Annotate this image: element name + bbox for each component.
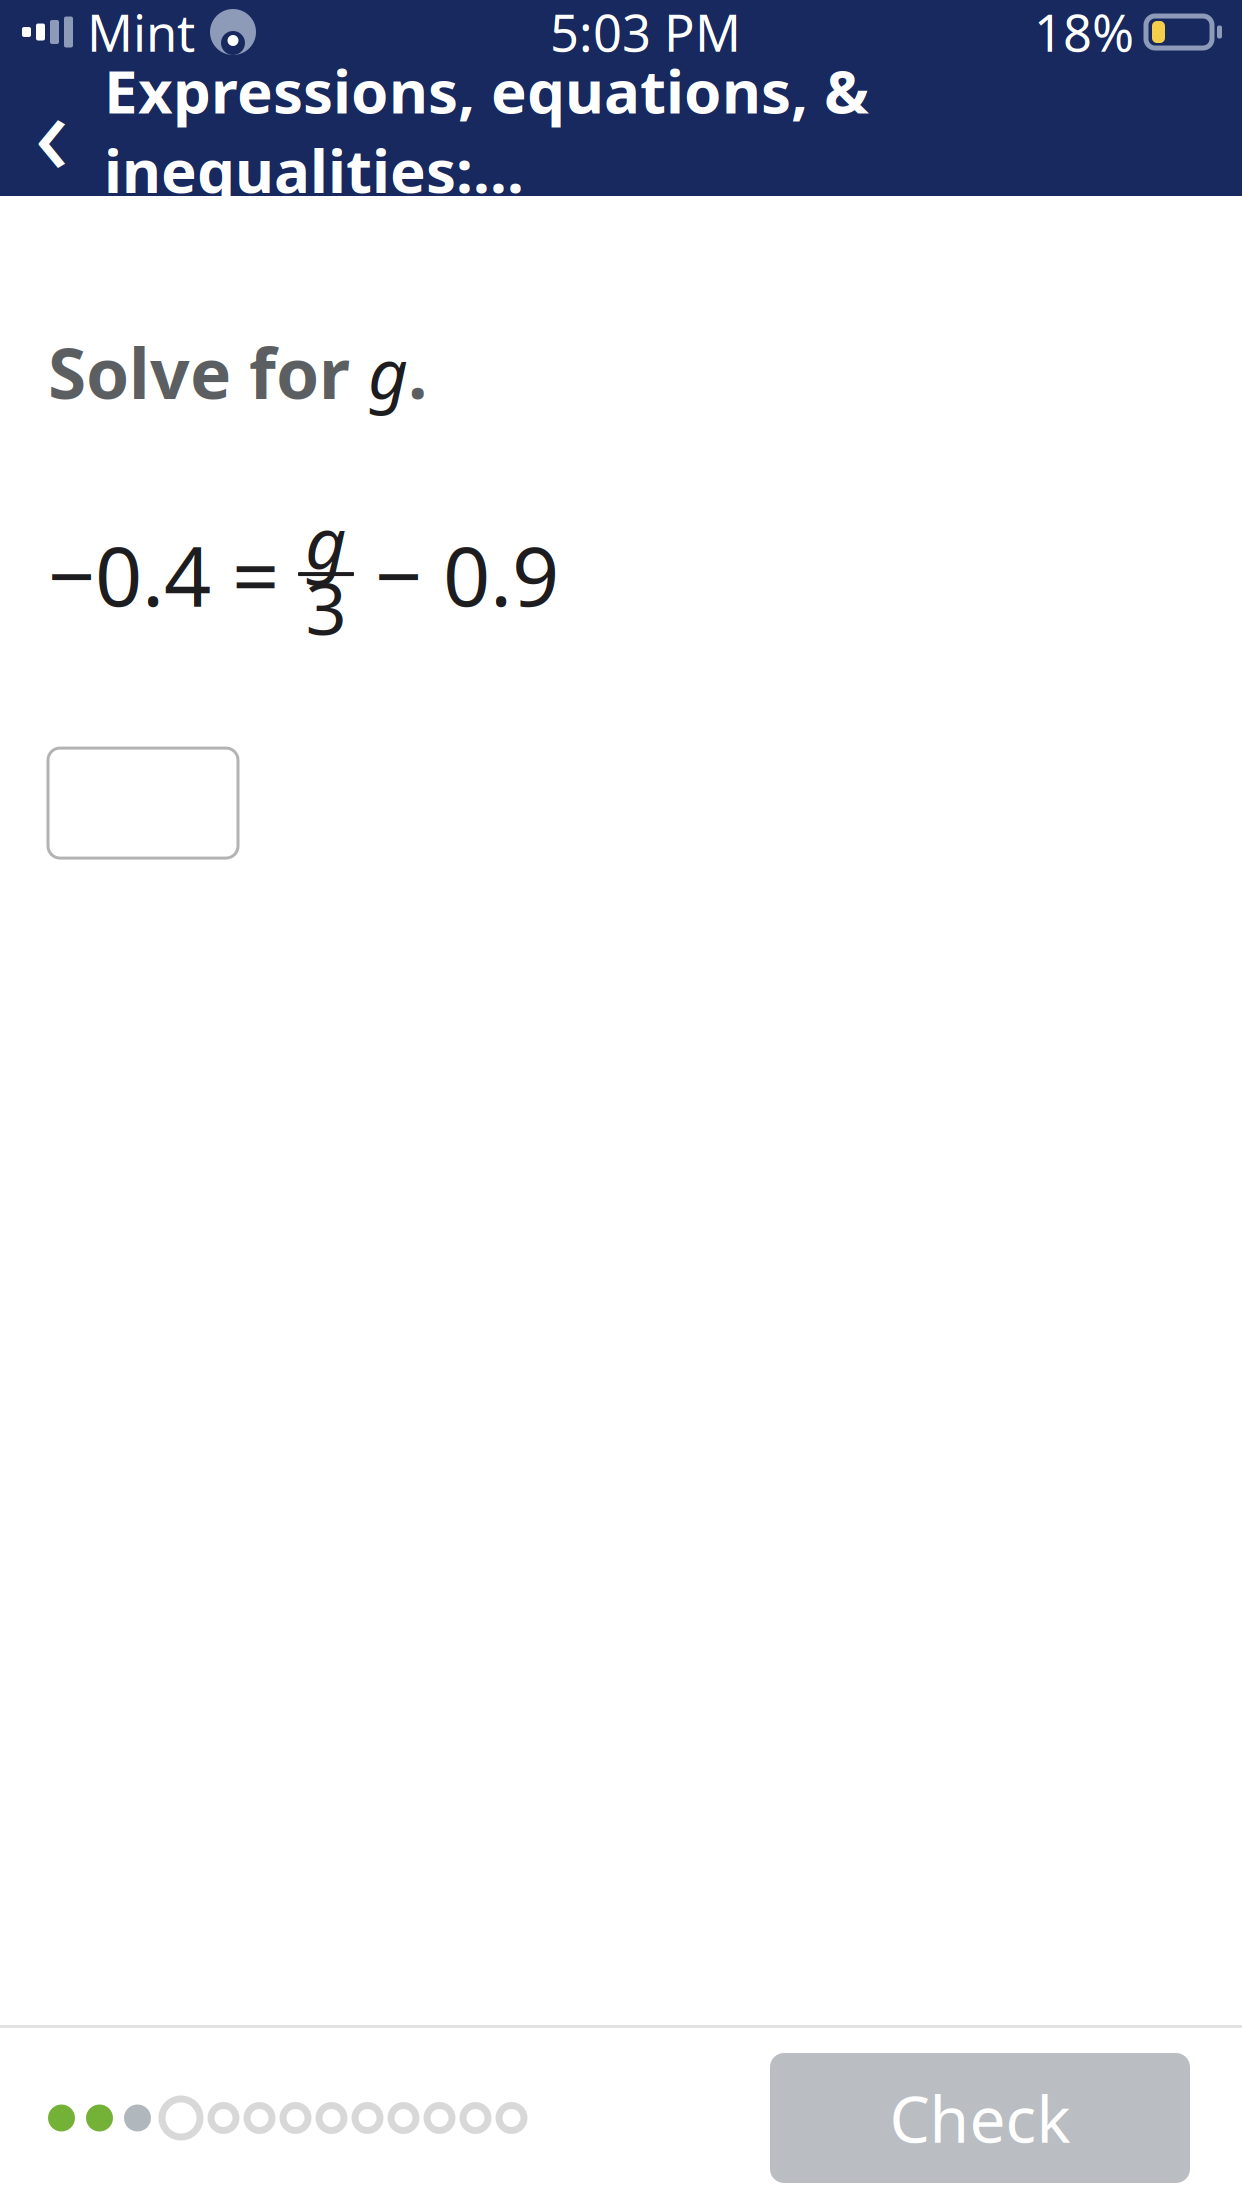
staticText: Solve for xyxy=(48,326,368,418)
staticText: ‹ xyxy=(34,54,70,206)
staticText: 5:03 PM xyxy=(550,0,741,66)
staticText: Expressions, equations, & inequalities:.… xyxy=(104,50,869,210)
staticText: − 0.9 xyxy=(375,519,559,629)
staticText: 18% xyxy=(1034,0,1134,66)
button[interactable]: Answer input xyxy=(48,748,238,858)
staticText: g xyxy=(368,326,408,418)
staticText: Check xyxy=(889,2075,1070,2160)
button[interactable]: Check xyxy=(770,2053,1190,2183)
staticText: Mint xyxy=(87,0,195,66)
staticText: 3 xyxy=(305,559,346,655)
staticText: g xyxy=(305,493,347,589)
button[interactable]: Back xyxy=(0,75,104,185)
staticText: −0.4 = xyxy=(48,519,279,629)
staticText: . xyxy=(408,326,427,418)
